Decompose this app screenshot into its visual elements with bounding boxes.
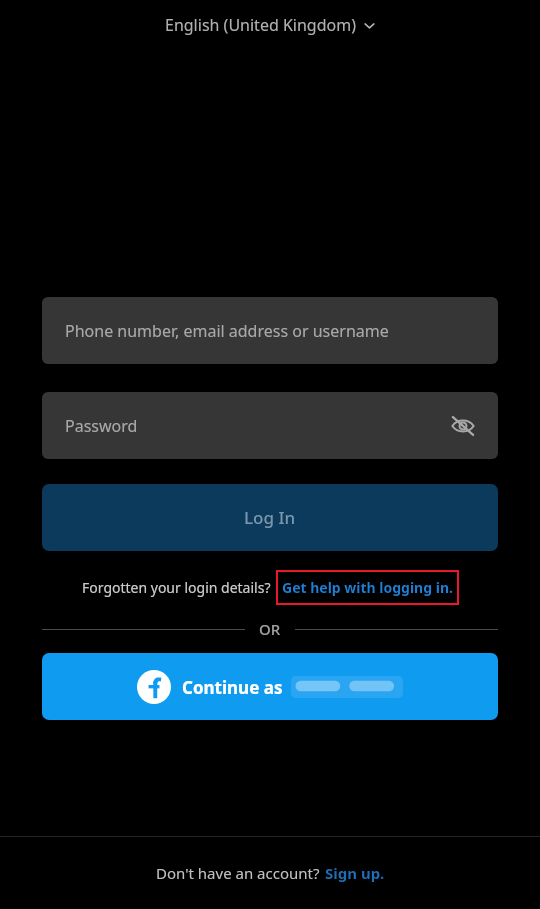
button[interactable]: Password [42,392,498,459]
button[interactable]: Get help with logging in. [276,570,459,605]
staticText: Forgotten your login details? [82,578,271,597]
button[interactable]: Sign up. [325,863,385,883]
button[interactable]: Continue as [42,653,498,720]
button[interactable]: English (United Kingdom) [0,14,540,36]
button[interactable]: Log In [42,484,498,551]
staticText: Don't have an account? [156,863,320,883]
staticText: Continue as [182,676,283,699]
staticText: OR [259,619,281,639]
button[interactable]: Show password [446,409,480,443]
staticText: Sign up. [325,863,385,883]
button[interactable]: Phone number, email address or username [42,297,498,364]
staticText: Password [65,415,138,437]
staticText: Get help with logging in. [282,578,453,597]
staticText: English (United Kingdom) [165,14,356,36]
staticText: Log In [244,506,296,529]
staticText: Phone number, email address or username [65,320,389,342]
